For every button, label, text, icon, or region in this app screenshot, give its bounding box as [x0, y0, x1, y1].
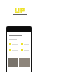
other: UP logo [15, 8, 25, 13]
